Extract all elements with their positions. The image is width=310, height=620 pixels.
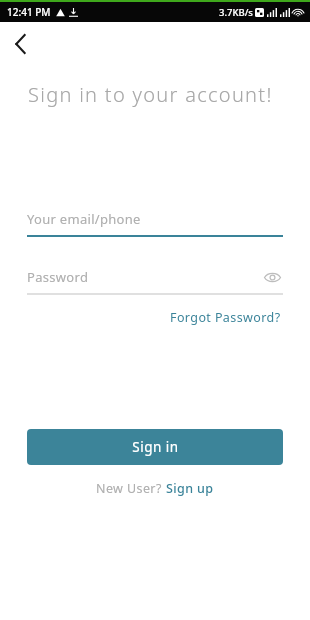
staticText: 12:41 PM [7, 5, 51, 19]
button[interactable]: Forgot Password? [168, 306, 283, 329]
staticText: Forgot Password? [170, 309, 281, 326]
button[interactable]: Password [27, 267, 283, 295]
staticText: Your email/phone [27, 210, 141, 228]
staticText: Password [27, 268, 89, 286]
button[interactable]: Sign up [166, 480, 214, 497]
staticText: Sign up [166, 480, 214, 497]
staticText: Sign in [132, 438, 179, 456]
staticText: New User? [96, 480, 166, 497]
staticText: 3.7KB/s [219, 6, 253, 19]
button[interactable]: Your email/phone [27, 209, 283, 237]
button[interactable]: Sign in [27, 429, 283, 465]
button[interactable]: Show password [261, 267, 283, 287]
button[interactable]: Back [4, 28, 36, 60]
staticText: Sign in to your account! [28, 81, 273, 108]
